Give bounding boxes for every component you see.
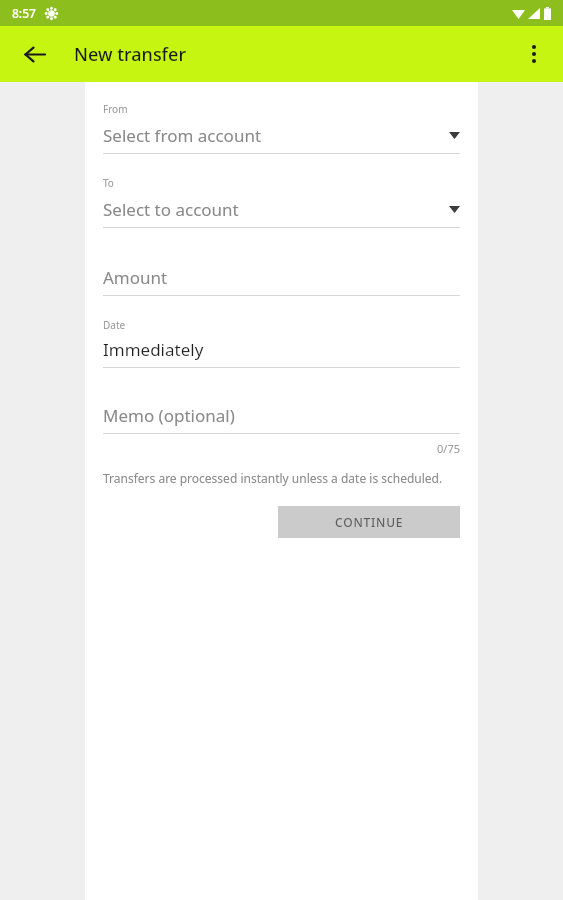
button[interactable]: Amount [103,266,460,296]
staticText: Select from account [103,124,449,147]
button[interactable]: Memo (optional) [103,404,460,434]
staticText: To [103,176,114,190]
staticText: Date [103,318,126,332]
staticText: Transfers are processed instantly unless… [103,470,443,486]
button[interactable]: More options [510,30,558,78]
staticText: CONTINUE [335,514,404,530]
button[interactable]: Date [103,318,460,368]
staticText: 8:57 [12,5,36,21]
staticText: From [103,102,128,116]
staticText: New transfer [74,42,186,67]
staticText: Memo (optional) [103,404,235,427]
button[interactable]: To [103,176,460,228]
staticText: Immediately [103,338,204,361]
staticText: 0/75 [103,441,460,456]
button[interactable]: Back [10,30,58,78]
staticText: Amount [103,266,168,289]
staticText: Select to account [103,198,449,221]
button[interactable]: From [103,102,460,154]
button[interactable]: CONTINUE [278,506,460,538]
